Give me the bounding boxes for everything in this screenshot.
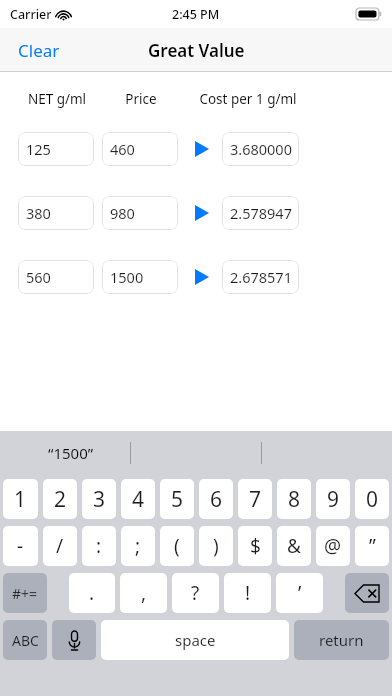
staticText: return <box>319 630 364 650</box>
staticText: ? <box>191 580 200 606</box>
staticText: 4 <box>132 485 145 514</box>
staticText: Cost per 1 g/ml <box>198 90 298 108</box>
button[interactable]: ” <box>355 526 389 566</box>
staticText: Great Value <box>148 39 245 62</box>
button[interactable]: : <box>82 526 116 566</box>
button[interactable]: . <box>69 573 115 613</box>
staticText: ! <box>245 580 251 606</box>
staticText: 460 <box>110 139 135 159</box>
staticText: 2.678571 <box>230 267 292 287</box>
button[interactable]: 3 <box>82 479 116 519</box>
button[interactable]: Calculate <box>190 201 214 225</box>
staticText: $ <box>250 533 261 559</box>
staticText: ; <box>135 533 141 559</box>
staticText: ABC <box>12 631 39 650</box>
staticText: 9 <box>327 485 340 514</box>
button[interactable]: 3.680000 <box>222 132 299 166</box>
staticText: ’ <box>298 580 302 606</box>
button[interactable]: 380 <box>18 196 94 230</box>
button[interactable]: - <box>3 526 38 566</box>
button[interactable]: 9 <box>316 479 350 519</box>
staticText: “1500” <box>48 443 94 463</box>
staticText: NET g/ml <box>18 90 96 108</box>
staticText: & <box>287 533 301 559</box>
button[interactable]: 7 <box>238 479 272 519</box>
staticText: - <box>17 533 24 559</box>
button[interactable]: ABC <box>3 620 47 660</box>
staticText: 980 <box>110 203 135 223</box>
button[interactable]: return <box>294 620 389 660</box>
button[interactable]: Calculate <box>190 137 214 161</box>
staticText: 1500 <box>110 267 144 287</box>
staticText: 125 <box>26 139 51 159</box>
staticText: . <box>89 580 95 606</box>
staticText: 2 <box>54 485 67 514</box>
button[interactable]: 2 <box>43 479 77 519</box>
staticText: 380 <box>26 203 51 223</box>
staticText: 2:45 PM <box>172 6 220 23</box>
button[interactable]: , <box>120 573 167 613</box>
button[interactable]: 8 <box>277 479 311 519</box>
button[interactable]: Clear <box>0 31 78 70</box>
staticText: : <box>96 533 102 559</box>
button[interactable]: 560 <box>18 260 94 294</box>
button[interactable]: ) <box>199 526 233 566</box>
staticText: #+= <box>12 584 38 603</box>
staticText: / <box>56 533 64 559</box>
button[interactable]: 0 <box>355 479 389 519</box>
button[interactable]: 460 <box>102 132 178 166</box>
staticText: 7 <box>249 485 262 514</box>
button[interactable]: ; <box>121 526 155 566</box>
staticText: Carrier <box>10 6 52 23</box>
staticText: 8 <box>288 485 301 514</box>
button[interactable]: 2.578947 <box>222 196 299 230</box>
staticText: ” <box>369 533 376 559</box>
staticText: Clear <box>18 39 60 62</box>
button[interactable]: 4 <box>121 479 155 519</box>
staticText: 6 <box>210 485 223 514</box>
button[interactable]: ! <box>224 573 271 613</box>
button[interactable]: & <box>277 526 311 566</box>
staticText: Price <box>102 90 180 108</box>
staticText: 560 <box>26 267 51 287</box>
button[interactable]: ’ <box>276 573 323 613</box>
button[interactable]: 980 <box>102 196 178 230</box>
staticText: ( <box>174 533 180 559</box>
staticText: @ <box>324 533 342 559</box>
button[interactable]: space <box>101 620 289 660</box>
button[interactable]: 1500 <box>102 260 178 294</box>
staticText: 1 <box>14 485 27 514</box>
staticText: 3 <box>93 485 106 514</box>
button[interactable]: Calculate <box>190 265 214 289</box>
staticText: ) <box>213 533 219 559</box>
button[interactable]: ( <box>160 526 194 566</box>
button[interactable]: 1 <box>3 479 38 519</box>
button[interactable]: @ <box>316 526 350 566</box>
button[interactable]: 6 <box>199 479 233 519</box>
button[interactable]: 125 <box>18 132 94 166</box>
staticText: 0 <box>366 485 379 514</box>
button[interactable]: Backspace <box>345 573 389 613</box>
staticText: 3.680000 <box>230 139 292 159</box>
button[interactable]: 5 <box>160 479 194 519</box>
staticText: space <box>175 630 216 650</box>
staticText: 2.578947 <box>230 203 292 223</box>
button[interactable]: ? <box>172 573 219 613</box>
button[interactable]: Dictation <box>52 620 96 660</box>
button[interactable]: 2.678571 <box>222 260 299 294</box>
button[interactable]: $ <box>238 526 272 566</box>
button[interactable]: #+= <box>3 573 47 613</box>
staticText: 5 <box>171 485 184 514</box>
staticText: , <box>141 580 147 606</box>
button[interactable]: / <box>43 526 77 566</box>
